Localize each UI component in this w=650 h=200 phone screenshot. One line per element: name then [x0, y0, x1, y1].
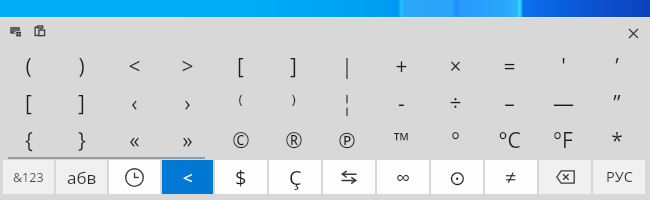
button[interactable]: ° — [428, 122, 482, 159]
button[interactable]: ' — [536, 48, 590, 85]
staticText: × — [449, 52, 462, 81]
button[interactable]: › — [161, 85, 214, 122]
button[interactable]: ⊙ — [431, 160, 483, 194]
button[interactable]: ) — [55, 48, 108, 85]
button[interactable]: < — [162, 160, 213, 194]
staticText: ≠ — [505, 164, 517, 191]
button[interactable]: > — [161, 48, 214, 85]
staticText: ) — [78, 52, 85, 81]
staticText: РУС — [606, 167, 633, 187]
staticText: ℗ — [338, 126, 356, 155]
button[interactable]: ¦ — [320, 85, 374, 122]
button[interactable]: Ç — [269, 160, 321, 194]
staticText: абв — [67, 166, 97, 189]
button[interactable]: = — [482, 48, 536, 85]
button[interactable]: ≠ — [485, 160, 537, 194]
button[interactable]: ℗ — [320, 122, 374, 159]
button[interactable]: × — [428, 48, 482, 85]
button[interactable]: – — [482, 85, 536, 122]
staticText: ‹ — [131, 89, 138, 118]
staticText: ( — [25, 52, 32, 81]
button[interactable]: [ — [214, 48, 267, 85]
staticText: * — [611, 126, 623, 155]
staticText: < — [128, 52, 141, 81]
staticText: - — [398, 89, 405, 118]
staticText: › — [184, 89, 191, 118]
staticText: » — [182, 126, 193, 155]
button[interactable]: ] — [267, 48, 320, 85]
staticText: = — [503, 52, 516, 81]
staticText: © — [232, 126, 250, 155]
button[interactable]: ∞ — [377, 160, 429, 194]
button[interactable]: * — [590, 122, 644, 159]
button[interactable]: ( — [2, 48, 55, 85]
button[interactable]: Close — [620, 20, 646, 46]
button[interactable] — [323, 160, 375, 194]
button[interactable]: { — [2, 122, 55, 159]
staticText: ] — [290, 52, 297, 81]
staticText: [ — [25, 89, 32, 118]
button[interactable]: ] — [55, 85, 108, 122]
staticText: [ — [237, 52, 244, 81]
button[interactable]: - — [374, 85, 428, 122]
button[interactable]: Clipboard — [27, 18, 49, 40]
button[interactable]: ® — [267, 122, 320, 159]
button[interactable] — [109, 160, 160, 194]
button[interactable]: ™ — [374, 122, 428, 159]
button[interactable]: ÷ — [428, 85, 482, 122]
button[interactable]: | — [320, 48, 374, 85]
button[interactable]: Keyboard settings — [4, 19, 26, 41]
staticText: ⁾ — [291, 89, 296, 118]
button[interactable]: ‹ — [108, 85, 161, 122]
button[interactable]: &123 — [3, 160, 54, 194]
staticText: ∞ — [396, 164, 411, 191]
staticText: ÷ — [449, 89, 462, 118]
button[interactable]: РУС — [593, 160, 645, 194]
staticText: « — [129, 126, 140, 155]
staticText: °C — [498, 126, 521, 155]
button[interactable]: абв — [56, 160, 107, 194]
button[interactable]: ⁽ — [214, 85, 267, 122]
staticText: °F — [553, 126, 573, 155]
button[interactable]: < — [108, 48, 161, 85]
button[interactable]: °F — [536, 122, 590, 159]
button[interactable]: } — [55, 122, 108, 159]
button[interactable]: $ — [215, 160, 267, 194]
staticText: ' — [561, 52, 566, 81]
button[interactable]: + — [374, 48, 428, 85]
staticText: > — [181, 52, 194, 81]
staticText: — — [553, 89, 574, 118]
button[interactable]: °C — [482, 122, 536, 159]
staticText: | — [341, 52, 353, 81]
staticText: – — [504, 89, 515, 118]
button[interactable]: ” — [590, 85, 644, 122]
button[interactable]: © — [214, 122, 267, 159]
staticText: + — [395, 52, 408, 81]
staticText: ¦ — [341, 89, 353, 118]
staticText: < — [183, 166, 193, 189]
staticText: ® — [285, 126, 303, 155]
staticText: ⊙ — [449, 166, 466, 189]
staticText: ] — [78, 89, 85, 118]
staticText: } — [78, 126, 86, 155]
staticText: Ç — [289, 164, 302, 191]
staticText: ™ — [393, 126, 410, 155]
button[interactable]: ’ — [590, 48, 644, 85]
button[interactable]: ⁾ — [267, 85, 320, 122]
staticText: ” — [613, 89, 621, 118]
staticText: { — [25, 126, 33, 155]
button[interactable]: « — [108, 122, 161, 159]
staticText: ’ — [615, 52, 619, 81]
staticText: $ — [235, 164, 247, 191]
button[interactable]: — — [536, 85, 590, 122]
button[interactable] — [539, 160, 591, 194]
staticText: &123 — [13, 169, 44, 186]
button[interactable]: » — [161, 122, 214, 159]
staticText: ⁽ — [238, 89, 243, 118]
button[interactable]: [ — [2, 85, 55, 122]
staticText: ° — [451, 126, 460, 155]
